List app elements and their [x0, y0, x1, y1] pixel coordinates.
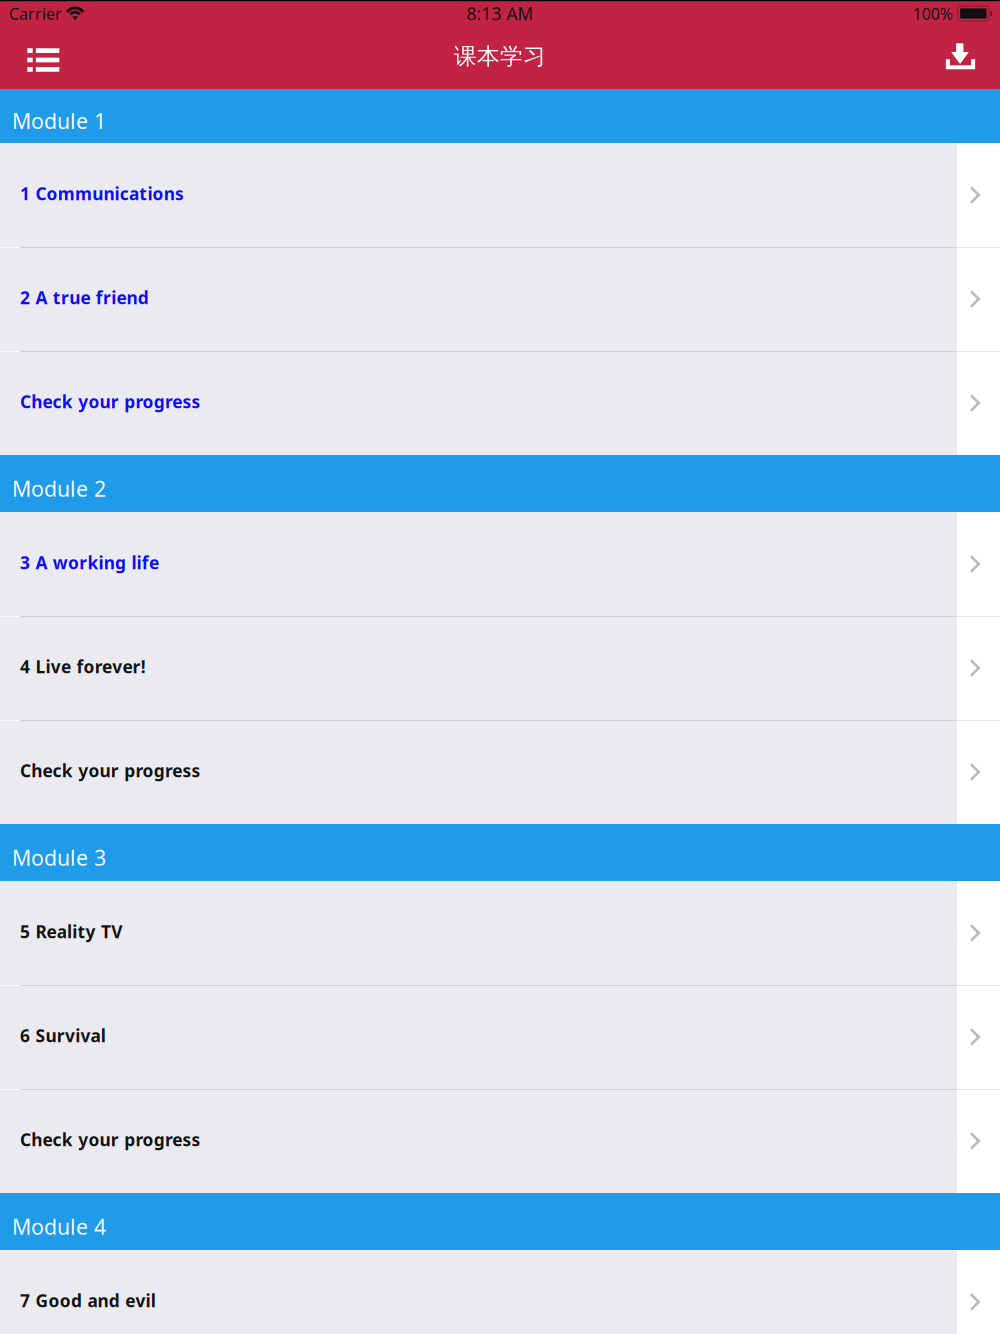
- button[interactable]: Check your progress: [0, 1089, 1000, 1193]
- button[interactable]: Download: [931, 27, 989, 89]
- staticText: Module 1: [12, 107, 106, 135]
- button[interactable]: 7 Good and evil: [0, 1250, 1000, 1334]
- button[interactable]: Check your progress: [0, 720, 1000, 824]
- button[interactable]: 6 Survival: [0, 985, 1000, 1089]
- button[interactable]: 5 Reality TV: [0, 881, 1000, 985]
- staticText: 2 A true friend: [20, 286, 149, 309]
- staticText: Carrier: [9, 3, 62, 24]
- staticText: 课本学习: [454, 43, 546, 70]
- staticText: 4 Live forever!: [20, 655, 146, 678]
- staticText: 100%: [913, 3, 953, 24]
- button[interactable]: 1 Communications: [0, 143, 1000, 247]
- staticText: Module 2: [12, 474, 106, 503]
- button[interactable]: Menu: [14, 27, 72, 89]
- staticText: Module 4: [12, 1212, 106, 1241]
- button[interactable]: 3 A working life: [0, 512, 1000, 616]
- staticText: Check your progress: [20, 759, 201, 782]
- staticText: 5 Reality TV: [20, 920, 122, 943]
- staticText: 7 Good and evil: [20, 1289, 156, 1312]
- button[interactable]: 2 A true friend: [0, 247, 1000, 351]
- staticText: Check your progress: [20, 1128, 201, 1151]
- staticText: 6 Survival: [20, 1024, 106, 1047]
- staticText: 3 A working life: [20, 551, 159, 574]
- staticText: Module 3: [12, 843, 106, 872]
- button[interactable]: Check your progress: [0, 351, 1000, 455]
- staticText: 1 Communications: [20, 182, 184, 205]
- staticText: Check your progress: [20, 390, 201, 413]
- button[interactable]: 4 Live forever!: [0, 616, 1000, 720]
- staticText: 8:13 AM: [466, 2, 533, 25]
